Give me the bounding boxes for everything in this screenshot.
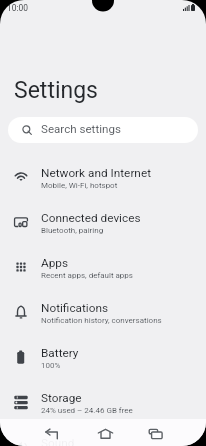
staticText: 100%: [41, 361, 61, 370]
staticText: Recent apps, default apps: [41, 271, 133, 280]
staticText: 10:00: [7, 3, 28, 13]
staticText: Sound: [41, 436, 75, 446]
staticText: Notifications: [41, 301, 109, 315]
button[interactable]: Notifications: [0, 290, 206, 335]
button[interactable]: Search settings: [8, 117, 198, 143]
staticText: Battery: [41, 346, 79, 360]
button[interactable]: Battery: [0, 335, 206, 380]
staticText: Apps: [41, 256, 69, 270]
button[interactable]: Sound: [0, 425, 206, 446]
button[interactable]: Recent apps: [135, 419, 175, 446]
staticText: Notification history, conversations: [41, 316, 162, 325]
button[interactable]: Storage: [0, 380, 206, 425]
staticText: 24% used – 24.46 GB free: [41, 406, 133, 415]
staticText: Mobile, Wi-Fi, hotspot: [41, 181, 118, 190]
staticText: Settings: [14, 77, 98, 104]
staticText: Connected devices: [41, 211, 141, 225]
button[interactable]: Home: [85, 419, 125, 446]
button[interactable]: Apps: [0, 245, 206, 290]
button[interactable]: Back: [32, 419, 72, 446]
staticText: Search settings: [41, 122, 121, 136]
staticText: Network and Internet: [41, 166, 152, 180]
staticText: Bluetooth, pairing: [41, 226, 104, 235]
staticText: Storage: [41, 391, 82, 405]
button[interactable]: Connected devices: [0, 200, 206, 245]
button[interactable]: Network and Internet: [0, 155, 206, 200]
